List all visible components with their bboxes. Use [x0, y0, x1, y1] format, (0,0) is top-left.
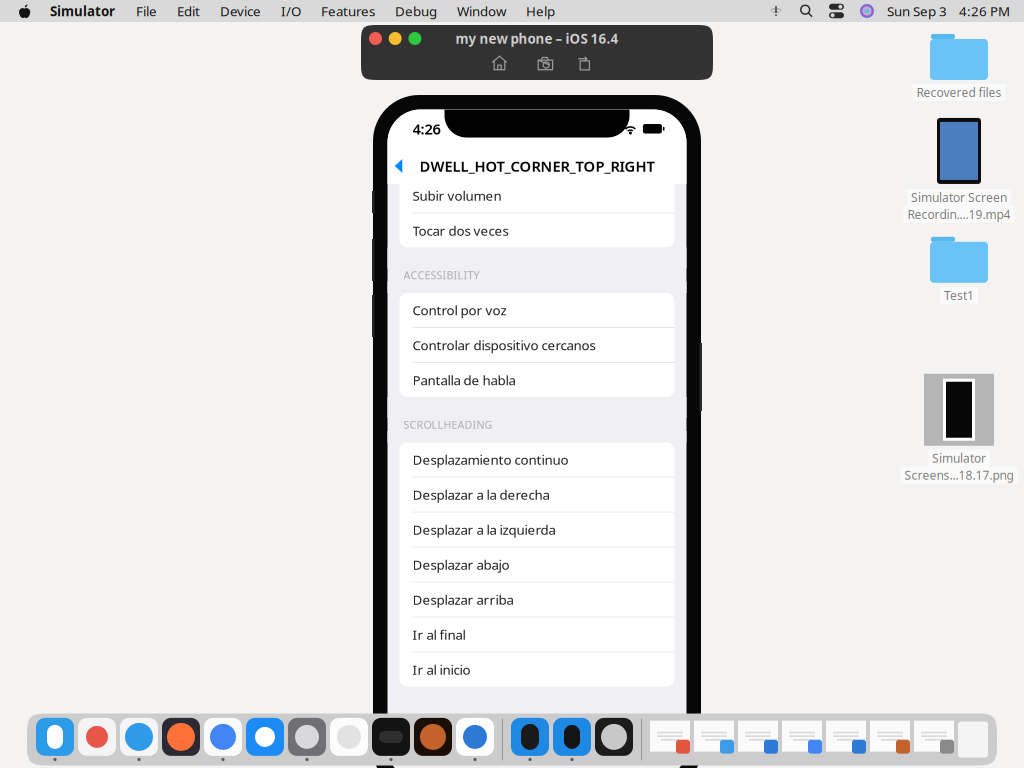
staticText: ACCESSIBILITY [403, 268, 479, 282]
staticText: Features [321, 2, 375, 20]
button[interactable]: Minimized window [650, 721, 690, 758]
staticText: DWELL_HOT_CORNER_TOP_RIGHT [419, 156, 654, 176]
button[interactable]: Device [210, 0, 271, 22]
button[interactable]: Siri [852, 0, 882, 22]
button[interactable]: Minimized window [870, 721, 910, 758]
button[interactable]: Help [516, 0, 565, 22]
button[interactable]: Ir al inicio [399, 652, 674, 686]
button[interactable]: Wi-Fi [761, 0, 791, 22]
button[interactable]: File [126, 0, 167, 22]
staticText: I/O [281, 2, 301, 20]
button[interactable]: Simulator [553, 718, 591, 761]
button[interactable]: Simulator [894, 374, 1024, 484]
button[interactable]: I/O [271, 0, 311, 22]
button[interactable]: Control por voz [399, 293, 674, 328]
button[interactable]: Controlar dispositivo cercanos [399, 328, 674, 363]
staticText: my new phone – iOS 16.4 [455, 30, 618, 47]
button[interactable]: Window [447, 0, 516, 22]
button[interactable]: Notes [330, 718, 368, 761]
staticText: Recordin....19.mp4 [907, 206, 1010, 222]
button[interactable]: Recovered files [894, 34, 1024, 101]
staticText: Ir al final [412, 626, 465, 643]
button[interactable]: Safari [120, 718, 158, 761]
button[interactable]: Finder [36, 718, 74, 761]
staticText: Controlar dispositivo cercanos [412, 336, 595, 354]
staticText: Desplazamiento continuo [412, 451, 568, 468]
staticText: Recovered files [916, 84, 1001, 100]
staticText: Simulator [50, 2, 115, 20]
button[interactable]: Settings [288, 718, 326, 761]
button[interactable]: Launchpad [78, 718, 116, 761]
button[interactable]: Apple menu [7, 0, 39, 22]
button[interactable]: Desplazamiento continuo [399, 442, 674, 477]
button[interactable]: Control Center [821, 0, 852, 22]
button[interactable]: Desplazar abajo [399, 547, 674, 582]
button[interactable]: Debug [385, 0, 447, 22]
staticText: Simulator [932, 450, 986, 466]
staticText: Desplazar abajo [412, 556, 509, 573]
button[interactable]: Features [311, 0, 385, 22]
button[interactable]: GarageBand [414, 718, 452, 761]
button[interactable]: Minimized window [694, 721, 734, 758]
staticText: Desplazar a la derecha [412, 486, 549, 503]
button[interactable]: Tocar dos veces [399, 213, 674, 247]
button[interactable]: Desplazar a la derecha [399, 477, 674, 512]
staticText: 4:26 [412, 119, 440, 138]
staticText: Desplazar arriba [412, 591, 513, 608]
staticText: File [136, 2, 157, 20]
staticText: Window [457, 2, 506, 20]
staticText: Desplazar a la izquierda [412, 521, 555, 538]
button[interactable]: Spotlight [791, 0, 821, 22]
staticText: Debug [395, 2, 437, 20]
button[interactable]: 4:26 PM [952, 0, 1017, 22]
staticText: 4:26 PM [959, 2, 1010, 20]
button[interactable]: Pantalla de habla [399, 363, 674, 397]
button[interactable]: Firefox [162, 718, 200, 761]
staticText: Subir volumen [412, 187, 501, 204]
button[interactable]: Simulator [39, 0, 126, 22]
button[interactable]: Desplazar arriba [399, 582, 674, 617]
button[interactable]: Ir al final [399, 617, 674, 652]
staticText: Edit [177, 2, 200, 20]
button[interactable]: VS Code [456, 718, 494, 761]
button[interactable]: Minimized window [782, 721, 822, 758]
staticText: Sun Sep 3 [887, 2, 947, 20]
button[interactable]: Minimized window [826, 721, 866, 758]
button[interactable]: Edit [167, 0, 210, 22]
button[interactable]: Home [487, 53, 511, 73]
button[interactable]: Sun Sep 3 [882, 0, 952, 22]
button[interactable]: Minimized window [738, 721, 778, 758]
staticText: Device [220, 2, 261, 20]
staticText: Test1 [944, 287, 974, 303]
staticText: Simulator Screen [911, 189, 1007, 205]
button[interactable]: Test1 [894, 237, 1024, 304]
button[interactable]: QuickTime [595, 718, 633, 761]
button[interactable]: Simulator Screen [894, 117, 1024, 223]
button[interactable]: Screenshot [533, 53, 557, 73]
button[interactable]: App Store [246, 718, 284, 761]
staticText: Tocar dos veces [412, 222, 508, 239]
button[interactable]: Minimized window [914, 721, 954, 758]
staticText: SCROLLHEADING [403, 417, 492, 432]
button[interactable]: Back [387, 149, 409, 183]
button[interactable]: Terminal [372, 718, 410, 761]
staticText: Pantalla de habla [412, 371, 515, 389]
button[interactable]: Chrome [204, 718, 242, 761]
button[interactable]: Desplazar a la izquierda [399, 512, 674, 547]
staticText: Ir al inicio [412, 661, 470, 678]
staticText: Control por voz [412, 301, 506, 319]
button[interactable]: Rotate [572, 53, 596, 73]
button[interactable]: Xcode [511, 718, 549, 761]
button[interactable]: Subir volumen [399, 178, 674, 213]
staticText: Screens...18.17.png [904, 467, 1013, 483]
button[interactable]: Trash [958, 721, 988, 757]
staticText: Help [526, 2, 555, 20]
